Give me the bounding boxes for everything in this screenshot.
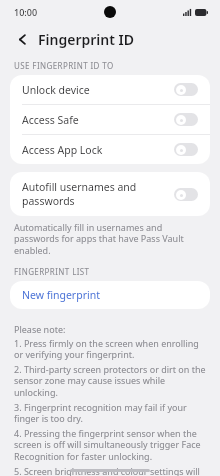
button[interactable]: New fingerprint [10,281,210,309]
staticText: Automatically fill in usernames and pass… [14,221,206,257]
staticText: Unlock device [22,83,174,97]
staticText: Access App Lock [22,143,174,157]
button[interactable]: Access App Lock [10,135,210,164]
staticText: New fingerprint [22,288,100,302]
button[interactable]: Back [12,29,32,49]
staticText: 2. Third-party screen protectors or dirt… [14,363,206,399]
staticText: USE FINGERPRINT ID TO [14,60,114,71]
staticText: Autofill usernames and passwords [22,180,174,208]
button[interactable]: Unlock device [10,75,210,105]
other: Toggle off [174,188,198,201]
button[interactable]: Access Safe [10,105,210,135]
other: Toggle off [174,143,198,156]
other: Toggle off [174,113,198,126]
staticText: 4. Pressing the fingerprint sensor when … [14,427,206,463]
other: Toggle off [174,83,198,96]
button[interactable]: Autofill usernames and passwords [10,172,210,216]
staticText: FINGERPRINT LIST [14,266,90,277]
staticText: Access Safe [22,113,174,127]
staticText: 3. Fingerprint recognition may fail if y… [14,401,206,425]
staticText: 10:00 [14,6,38,18]
staticText: 1. Press firmly on the screen when enrol… [14,337,206,361]
staticText: Fingerprint ID [38,30,134,49]
staticText: Please note: [14,323,66,335]
staticText: 5. Screen brightness and colour settings… [14,465,206,476]
